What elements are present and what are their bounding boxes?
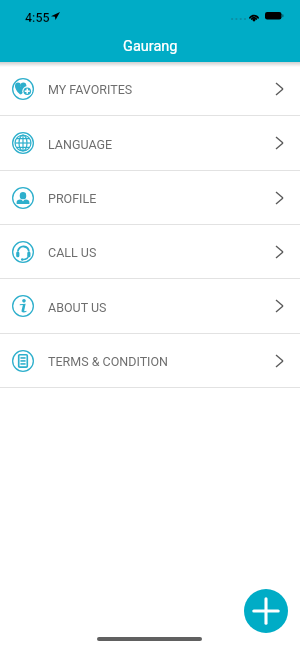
staticText: Gaurang <box>123 38 178 55</box>
staticText: CALL US <box>48 245 97 260</box>
button[interactable]: TERMS & CONDITION <box>0 334 300 387</box>
button[interactable]: MY FAVORITES <box>0 62 300 115</box>
staticText: LANGUAGE <box>48 137 113 152</box>
button[interactable]: LANGUAGE <box>0 116 300 170</box>
button[interactable]: CALL US <box>0 225 300 278</box>
staticText: ABOUT US <box>48 300 107 315</box>
staticText: PROFILE <box>48 191 97 206</box>
staticText: TERMS & CONDITION <box>48 354 169 369</box>
button[interactable]: ABOUT US <box>0 279 300 333</box>
button[interactable]: Add <box>244 589 288 633</box>
button[interactable]: PROFILE <box>0 171 300 224</box>
staticText: MY FAVORITES <box>48 82 133 97</box>
staticText: 4:55 <box>25 10 50 25</box>
